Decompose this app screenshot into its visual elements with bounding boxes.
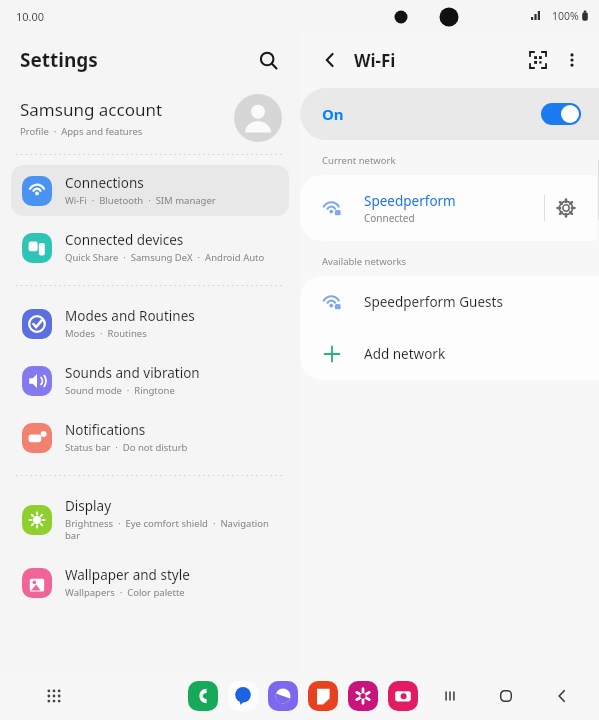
staticText: 100%: [552, 9, 579, 23]
staticText: Speedperform Guests: [364, 293, 503, 311]
button[interactable]: Display: [11, 488, 289, 551]
staticText: Modes and Routines: [65, 307, 195, 325]
button[interactable]: Add network: [300, 328, 599, 380]
button[interactable]: Scan QR code: [521, 43, 555, 77]
staticText: Wallpapers · Color palette: [65, 586, 185, 599]
staticText: Available networks: [322, 255, 406, 268]
staticText: Modes · Routines: [65, 327, 147, 340]
staticText: Status bar · Do not disturb: [65, 441, 188, 454]
button[interactable]: Samsung account: [0, 88, 300, 154]
button[interactable]: Phone: [188, 681, 218, 711]
button[interactable]: On: [300, 88, 599, 140]
button[interactable]: Search: [250, 42, 286, 78]
staticText: Wallpaper and style: [65, 566, 190, 584]
button[interactable]: Connections: [11, 165, 289, 216]
button[interactable]: Recents: [435, 681, 465, 711]
staticText: Notifications: [65, 421, 146, 439]
button[interactable]: Samsung Notes: [308, 681, 338, 711]
staticText: Profile · Apps and features: [20, 125, 143, 138]
staticText: Connections: [65, 174, 144, 192]
button[interactable]: Speedperform Guests: [300, 276, 599, 328]
button[interactable]: Messages: [228, 681, 258, 711]
staticText: Speedperform: [364, 192, 456, 210]
button[interactable]: Notifications: [11, 412, 289, 463]
staticText: Quick Share · Samsung DeX · Android Auto: [65, 251, 265, 264]
button[interactable]: Photos: [348, 681, 378, 711]
staticText: Display: [65, 497, 112, 515]
staticText: Add network: [364, 345, 446, 363]
staticText: 10.00: [16, 9, 45, 24]
staticText: Connected devices: [65, 231, 184, 249]
button[interactable]: Modes and Routines: [11, 298, 289, 349]
staticText: Connected: [364, 211, 415, 225]
button[interactable]: Internet: [268, 681, 298, 711]
button[interactable]: Sounds and vibration: [11, 355, 289, 406]
button[interactable]: Speedperform: [300, 175, 597, 241]
staticText: Sound mode · Ringtone: [65, 384, 175, 397]
staticText: Brightness · Eye comfort shield · Naviga…: [65, 517, 278, 542]
button[interactable]: Network settings: [545, 187, 587, 229]
button[interactable]: Home: [491, 681, 521, 711]
button[interactable]: Wallpaper and style: [11, 557, 289, 608]
staticText: Wi-Fi · Bluetooth · SIM manager: [65, 194, 216, 207]
staticText: Sounds and vibration: [65, 364, 200, 382]
button[interactable]: Camera: [388, 681, 418, 711]
button[interactable]: Back: [547, 681, 577, 711]
button[interactable]: Apps: [38, 680, 70, 712]
button[interactable]: More options: [555, 43, 589, 77]
staticText: Wi-Fi: [354, 49, 396, 72]
staticText: On: [322, 104, 344, 124]
staticText: Samsung account: [20, 98, 163, 121]
button[interactable]: Connected devices: [11, 222, 289, 273]
staticText: Settings: [20, 47, 98, 73]
button[interactable]: Back: [314, 44, 346, 76]
staticText: Current network: [322, 154, 396, 167]
